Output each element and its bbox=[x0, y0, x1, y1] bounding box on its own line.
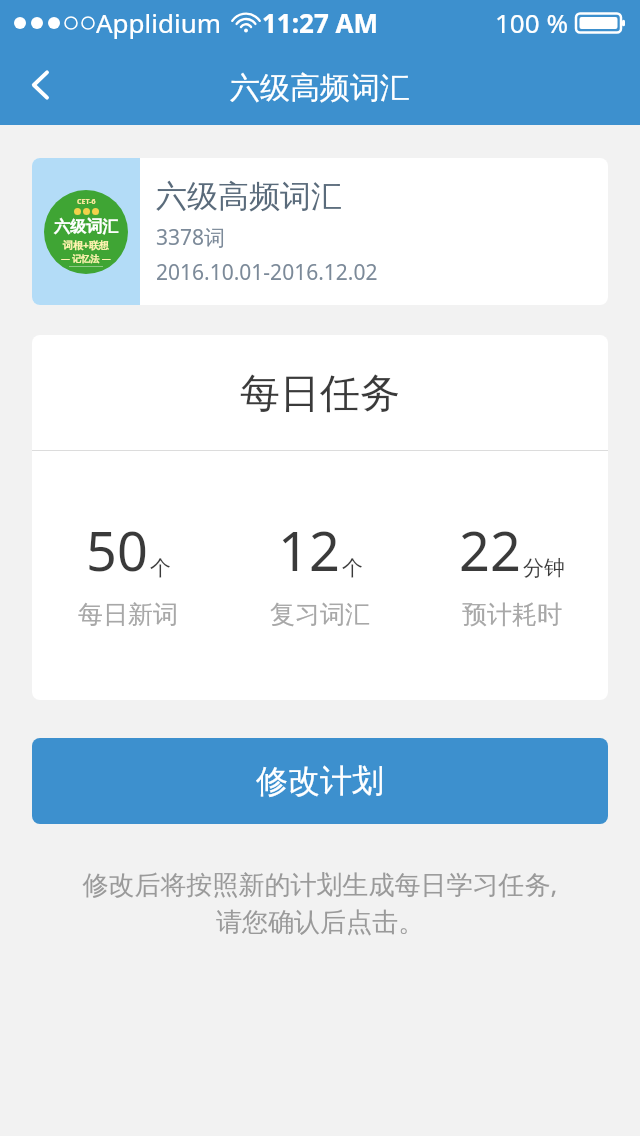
staticText: 分钟 bbox=[523, 555, 565, 581]
staticText: 每日新词 bbox=[78, 599, 178, 630]
staticText: 修改后将按照新的计划生成每日学习任务, 请您确认后点击。 bbox=[40, 866, 600, 939]
staticText: 11:27 AM bbox=[262, 5, 379, 40]
button[interactable]: CET-6 bbox=[32, 158, 608, 305]
staticText: 修改计划 bbox=[256, 761, 384, 801]
staticText: 个 bbox=[342, 555, 363, 581]
staticText: 词根+联想 bbox=[63, 238, 109, 252]
staticText: Applidium bbox=[96, 5, 222, 40]
staticText: 每日任务 bbox=[240, 368, 400, 418]
staticText: 个 bbox=[150, 555, 171, 581]
staticText: 预计耗时 bbox=[462, 599, 562, 630]
button[interactable]: Back bbox=[8, 52, 74, 118]
staticText: 六级高频词汇 bbox=[230, 69, 410, 107]
staticText: 22 bbox=[459, 513, 521, 587]
staticText: 2016.10.01-2016.12.02 bbox=[156, 258, 378, 287]
staticText: CET-6 bbox=[77, 197, 96, 207]
staticText: 50 bbox=[86, 513, 148, 587]
staticText: 六级高频词汇 bbox=[156, 177, 342, 216]
staticText: 六级词汇 bbox=[54, 217, 118, 237]
button[interactable]: 修改计划 bbox=[32, 738, 608, 824]
staticText: 3378词 bbox=[156, 223, 226, 252]
staticText: 复习词汇 bbox=[270, 599, 370, 630]
staticText: 12 bbox=[278, 513, 340, 587]
staticText: — 记忆法 — bbox=[61, 252, 111, 264]
staticText: 100 % bbox=[495, 5, 568, 40]
